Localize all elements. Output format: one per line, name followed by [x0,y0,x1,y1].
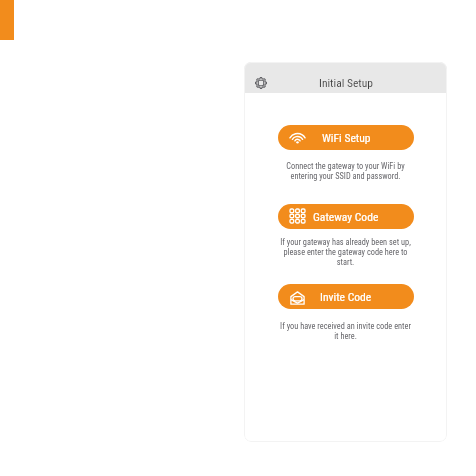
button[interactable]: Settings [249,71,272,94]
button[interactable]: Invite Code [278,284,414,309]
staticText: Connect the gateway to your WiFi by ente… [247,161,444,181]
staticText: If your gateway has already been set up,… [247,237,444,267]
staticText: WiFi Setup [322,131,371,145]
staticText: Initial Setup [319,76,373,89]
staticText: Invite Code [320,290,372,304]
staticText: Gateway Code [313,210,379,224]
button[interactable]: WiFi Setup [278,125,414,150]
staticText: If you have received an invite code ente… [247,321,444,341]
button[interactable]: Gateway Code [278,204,414,229]
